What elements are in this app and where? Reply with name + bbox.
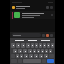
button[interactable] bbox=[12, 33, 41, 37]
button[interactable] bbox=[51, 43, 54, 48]
button[interactable] bbox=[39, 54, 43, 58]
button[interactable] bbox=[21, 43, 25, 48]
button[interactable] bbox=[41, 49, 44, 53]
button[interactable] bbox=[16, 54, 19, 58]
button[interactable]: Attachment preview bbox=[10, 11, 55, 19]
other: Attachment preview bbox=[14, 12, 20, 18]
button[interactable] bbox=[45, 49, 48, 53]
button[interactable] bbox=[23, 49, 27, 53]
button[interactable]: More bbox=[50, 34, 53, 37]
button[interactable]: Attach bbox=[42, 34, 45, 37]
button[interactable] bbox=[13, 49, 17, 53]
button[interactable] bbox=[34, 54, 38, 58]
button[interactable] bbox=[33, 49, 36, 53]
button[interactable] bbox=[16, 43, 20, 48]
button[interactable] bbox=[28, 49, 32, 53]
button[interactable]: Camera bbox=[46, 34, 49, 37]
button[interactable] bbox=[37, 49, 40, 53]
button[interactable]: Send bbox=[47, 59, 54, 63]
button[interactable] bbox=[20, 54, 23, 58]
button[interactable] bbox=[47, 43, 50, 48]
button[interactable] bbox=[24, 54, 28, 58]
button[interactable] bbox=[18, 49, 22, 53]
button[interactable] bbox=[26, 43, 30, 48]
button[interactable] bbox=[11, 43, 15, 48]
button[interactable] bbox=[31, 43, 34, 48]
button[interactable] bbox=[44, 54, 48, 58]
button[interactable] bbox=[10, 4, 55, 10]
button[interactable] bbox=[29, 54, 33, 58]
button[interactable] bbox=[35, 43, 38, 48]
button[interactable] bbox=[39, 43, 42, 48]
button[interactable] bbox=[43, 43, 46, 48]
button[interactable] bbox=[49, 49, 52, 53]
